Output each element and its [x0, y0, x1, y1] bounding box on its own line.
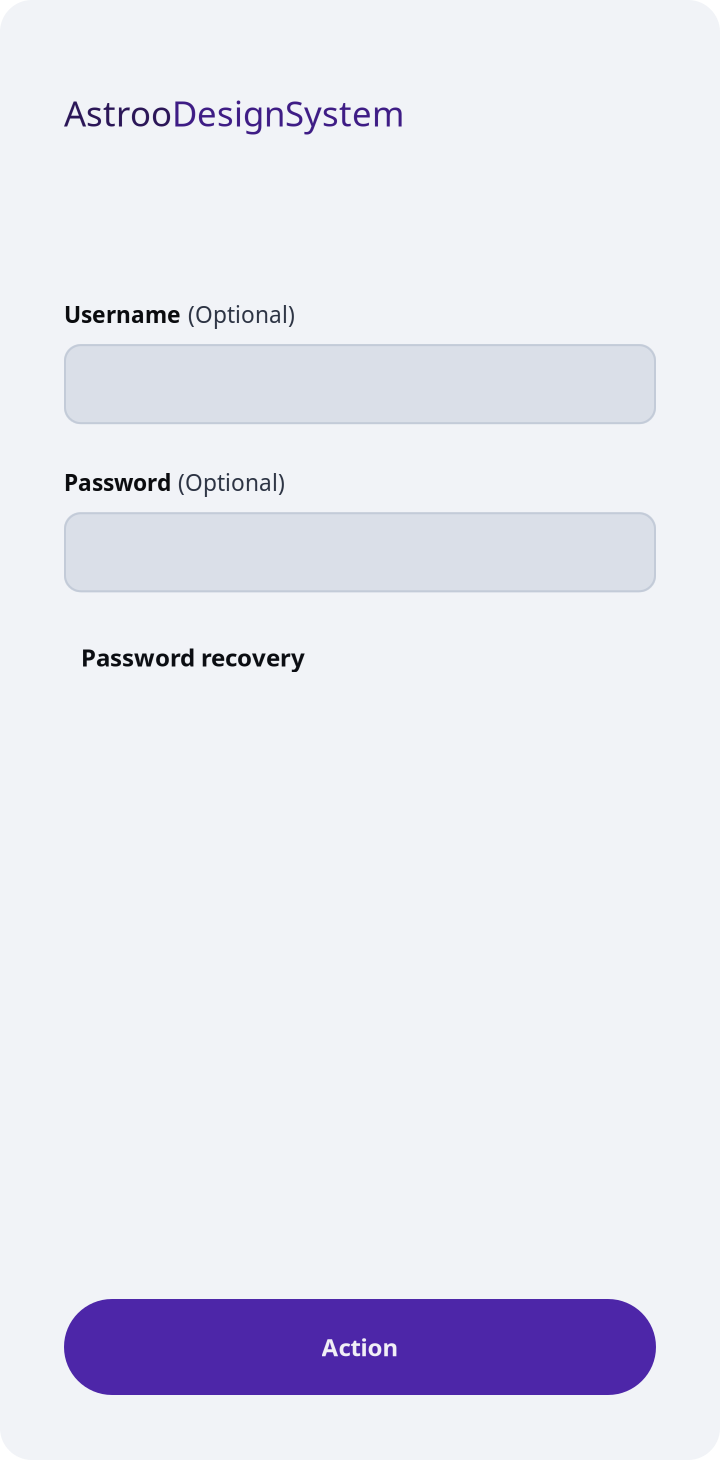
button[interactable]: Password text field: [64, 512, 656, 592]
button[interactable]: Action: [64, 1299, 656, 1395]
button[interactable]: Username text field: [64, 344, 656, 424]
staticText: (Optional): [178, 467, 285, 497]
button[interactable]: Password recovery: [64, 630, 322, 684]
staticText: Password: [64, 467, 171, 497]
staticText: Username: [64, 299, 181, 329]
staticText: DesignSystem: [172, 90, 404, 136]
staticText: Password recovery: [81, 641, 305, 673]
staticText: (Optional): [188, 299, 295, 329]
staticText: Action: [321, 1331, 398, 1363]
staticText: Astroo: [64, 90, 172, 136]
